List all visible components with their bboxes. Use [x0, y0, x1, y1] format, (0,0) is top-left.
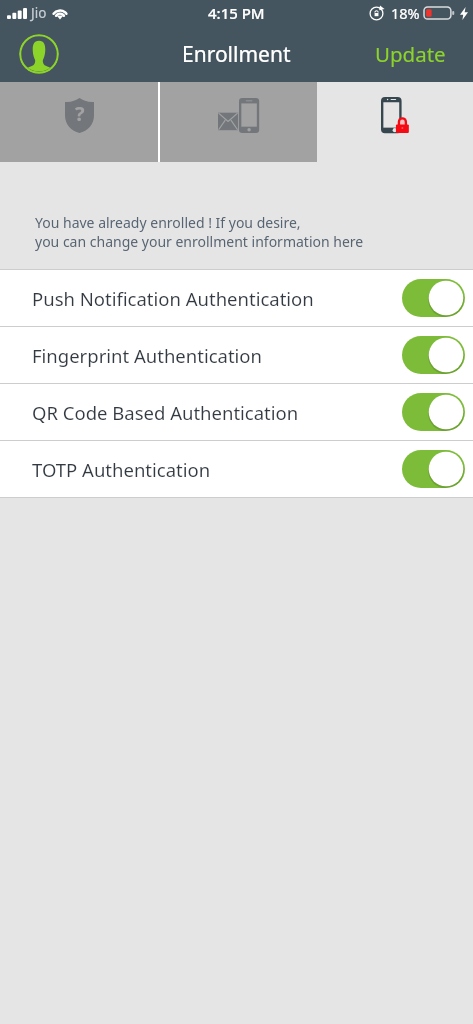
button[interactable]: Update — [359, 30, 473, 78]
staticText: You have already enrolled ! If you desir… — [35, 213, 364, 251]
staticText: QR Code Based Authentication — [32, 400, 299, 425]
button[interactable]: Fingerprint Authentication — [0, 327, 473, 383]
button[interactable]: TOTP Authentication — [0, 441, 473, 497]
button[interactable]: Email and SMS — [160, 82, 317, 162]
staticText: Enrollment — [182, 40, 291, 69]
staticText: 4:15 PM — [208, 3, 265, 23]
staticText: Fingerprint Authentication — [32, 343, 262, 368]
staticText: 18% — [391, 3, 420, 23]
button[interactable]: Device enrollment — [317, 82, 473, 162]
button[interactable]: Toggle QR Code Based Authentication — [402, 393, 465, 431]
button[interactable]: Toggle Fingerprint Authentication — [402, 336, 465, 374]
button[interactable]: Toggle TOTP Authentication — [402, 450, 465, 488]
staticText: Jio — [31, 4, 47, 22]
staticText: ? — [75, 100, 85, 127]
button[interactable]: QR Code Based Authentication — [0, 384, 473, 440]
button[interactable]: Toggle Push Notification Authentication — [402, 279, 465, 317]
button[interactable]: Security questions — [0, 82, 158, 162]
button[interactable]: Profile — [19, 34, 59, 74]
staticText: TOTP Authentication — [32, 457, 211, 482]
button[interactable]: Push Notification Authentication — [0, 270, 473, 326]
staticText: Update — [375, 40, 446, 68]
staticText: Push Notification Authentication — [32, 286, 314, 311]
